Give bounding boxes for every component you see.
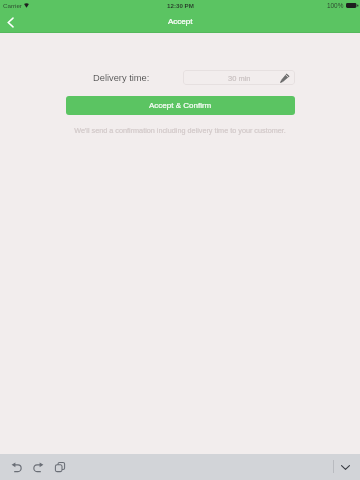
staticText: Delivery time: (93, 73, 150, 83)
staticText: We'll send a confirmation including deli… (74, 126, 286, 134)
button[interactable]: Hide keyboard (335, 457, 355, 477)
staticText: 100% (327, 2, 344, 9)
button[interactable]: Back (0, 12, 20, 32)
button[interactable]: Paste (49, 457, 71, 477)
button[interactable]: 30 min (183, 70, 295, 85)
staticText: Carrier (3, 2, 22, 9)
staticText: 12:30 PM (167, 2, 194, 9)
button[interactable]: Undo (6, 457, 28, 477)
staticText: 30 min (228, 74, 251, 82)
button[interactable]: Accept & Confirm (66, 96, 295, 115)
staticText: Accept (168, 17, 193, 26)
button[interactable]: Redo (27, 457, 49, 477)
staticText: Accept & Confirm (149, 101, 212, 110)
